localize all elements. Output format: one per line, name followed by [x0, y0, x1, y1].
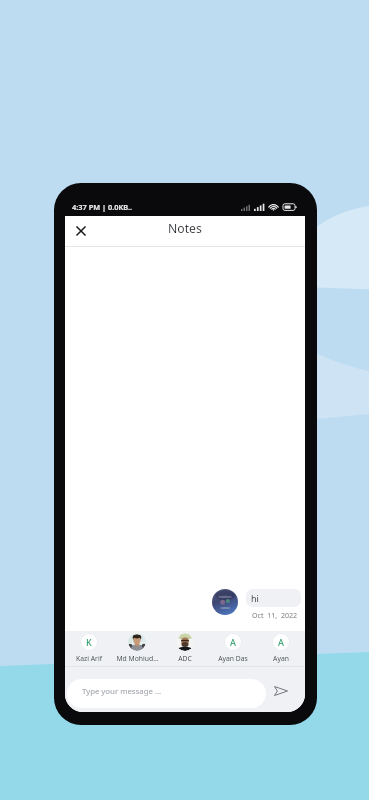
button[interactable]: Send: [269, 679, 292, 702]
staticText: 4:37 PM | 0.0KB..: [72, 202, 133, 212]
button[interactable]: A: [257, 631, 305, 666]
staticText: Oct 11, 2022: [252, 610, 298, 620]
staticText: A: [278, 636, 284, 648]
button[interactable]: K: [65, 631, 113, 666]
staticText: hi: [251, 592, 259, 604]
staticText: ADC: [178, 654, 192, 663]
staticText: Ayan: [273, 654, 289, 663]
staticText: Type your message ...: [82, 686, 162, 697]
button[interactable]: Type your message ...: [67, 679, 266, 708]
button[interactable]: Md Mohiud...: [113, 631, 161, 666]
button[interactable]: Close: [73, 223, 89, 239]
staticText: Notes: [168, 220, 202, 237]
button[interactable]: A: [209, 631, 257, 666]
staticText: Md Mohiud...: [116, 654, 159, 663]
staticText: K: [86, 636, 92, 648]
button[interactable]: ADC: [161, 631, 209, 666]
staticText: A: [230, 636, 236, 648]
staticText: Ayan Das: [218, 654, 248, 663]
staticText: Kazi Arif: [76, 654, 102, 663]
